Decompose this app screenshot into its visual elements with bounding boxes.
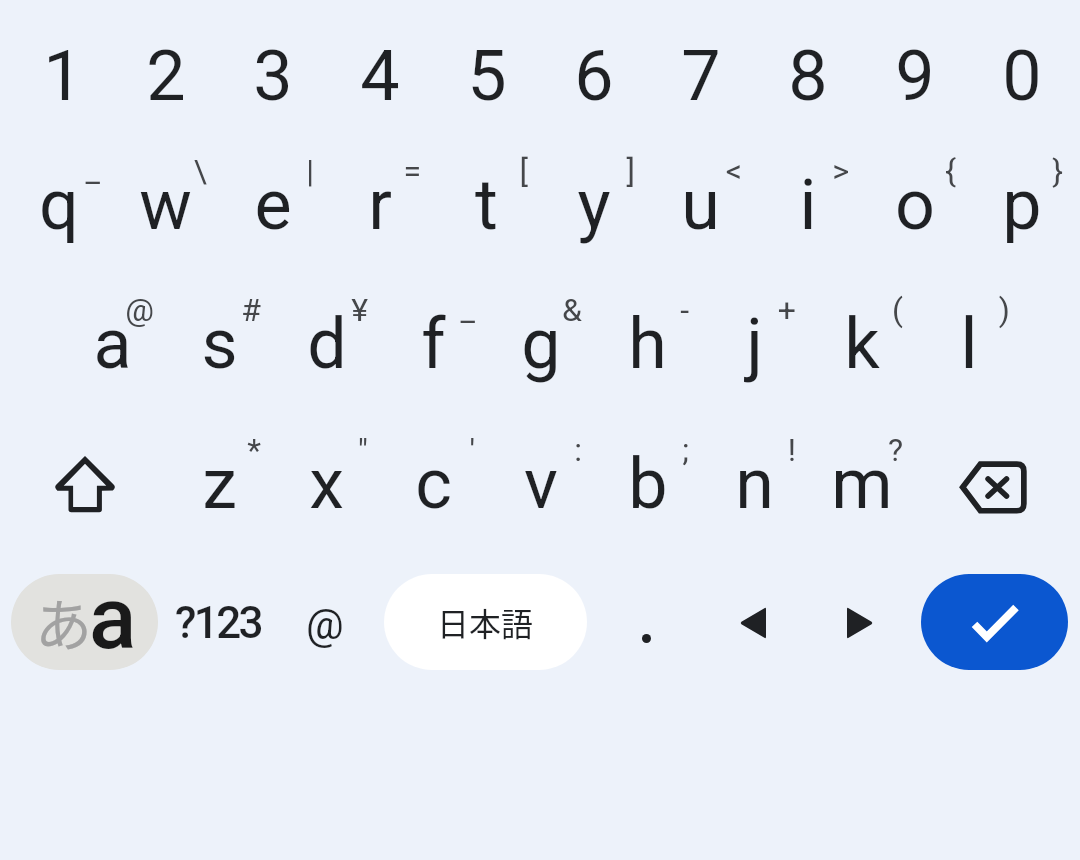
button[interactable]: f [380, 274, 487, 414]
button[interactable]: 5 [433, 6, 540, 146]
button[interactable]: w [112, 135, 219, 275]
staticText: b [628, 443, 668, 525]
staticText: ] [626, 152, 635, 190]
button[interactable]: 日本語 [384, 574, 587, 670]
staticText: f [421, 303, 446, 385]
staticText: t [475, 164, 498, 246]
staticText: 7 [681, 35, 721, 117]
staticText: h [628, 303, 667, 385]
staticText: @ [125, 291, 154, 329]
button[interactable]: あ [11, 574, 158, 670]
staticText: ( [892, 291, 903, 329]
button[interactable]: Backspace [914, 414, 1075, 554]
button[interactable]: q [5, 135, 112, 275]
button[interactable]: l [915, 274, 1022, 414]
staticText: _ [85, 152, 100, 190]
staticText: o [895, 164, 935, 246]
staticText: + [777, 291, 796, 329]
button[interactable]: 8 [754, 6, 861, 146]
staticText: x [309, 443, 344, 525]
button[interactable]: y [540, 135, 647, 275]
staticText: _ [460, 291, 475, 329]
staticText: i [799, 164, 817, 246]
staticText: | [306, 152, 314, 190]
staticText: u [681, 164, 720, 246]
button[interactable]: j [701, 274, 808, 414]
staticText: 1 [43, 35, 83, 117]
staticText: q [39, 164, 79, 246]
staticText: 4 [360, 35, 400, 117]
staticText: " [357, 431, 368, 469]
staticText: @ [306, 600, 344, 649]
button[interactable]: e [219, 135, 326, 275]
button[interactable]: x [273, 414, 380, 554]
button[interactable]: @ [272, 574, 379, 670]
button[interactable]: 1 [5, 6, 112, 146]
staticText: > [832, 152, 849, 190]
button[interactable]: b [594, 414, 701, 554]
button[interactable]: a [59, 274, 166, 414]
staticText: あ [35, 580, 92, 663]
button[interactable]: v [487, 414, 594, 554]
staticText: p [1002, 164, 1042, 246]
button[interactable]: c [380, 414, 487, 554]
button[interactable]: s [166, 274, 273, 414]
staticText: ' [469, 431, 475, 469]
staticText: n [735, 443, 774, 525]
button[interactable]: u [647, 135, 754, 275]
staticText: 6 [574, 35, 614, 117]
staticText: ¥ [351, 291, 368, 329]
button[interactable]: 4 [326, 6, 433, 146]
staticText: # [241, 291, 261, 329]
staticText: ? [887, 431, 903, 469]
button[interactable]: d [273, 274, 380, 414]
button[interactable]: Move cursor right [806, 574, 913, 670]
button[interactable]: Confirm [921, 574, 1068, 670]
staticText: : [574, 431, 582, 469]
staticText: [ [519, 152, 528, 190]
button[interactable]: 0 [968, 6, 1075, 146]
button[interactable]: n [701, 414, 808, 554]
staticText: - [680, 291, 689, 329]
staticText: v [524, 443, 558, 525]
button[interactable]: i [754, 135, 861, 275]
staticText: * [247, 431, 261, 469]
button[interactable]: t [433, 135, 540, 275]
staticText: 5 [467, 35, 507, 117]
button[interactable]: r [326, 135, 433, 275]
staticText: m [831, 443, 893, 525]
staticText: ) [998, 291, 1010, 329]
button[interactable]: z [166, 414, 273, 554]
staticText: k [844, 303, 880, 385]
button[interactable]: h [594, 274, 701, 414]
staticText: r [368, 164, 392, 246]
staticText: < [725, 152, 742, 190]
staticText: z [202, 443, 237, 525]
staticText: = [403, 152, 421, 190]
staticText: 2 [146, 35, 186, 117]
button[interactable]: 2 [112, 6, 219, 146]
staticText: & [562, 291, 582, 329]
button[interactable]: Move cursor left [699, 574, 806, 670]
staticText: s [201, 303, 238, 385]
button[interactable]: Shift [5, 414, 165, 554]
button[interactable] [592, 574, 699, 670]
staticText: l [960, 303, 978, 385]
staticText: ; [682, 431, 689, 469]
button[interactable]: ?123 [165, 574, 272, 670]
staticText: c [415, 443, 452, 525]
button[interactable]: 7 [647, 6, 754, 146]
button[interactable]: o [861, 135, 968, 275]
button[interactable]: g [487, 274, 594, 414]
staticText: d [307, 303, 347, 385]
staticText: a [93, 303, 132, 385]
staticText: } [1052, 152, 1063, 190]
staticText: y [577, 164, 611, 246]
button[interactable]: p [968, 135, 1075, 275]
button[interactable]: 9 [861, 6, 968, 146]
button[interactable]: m [808, 414, 915, 554]
button[interactable]: k [808, 274, 915, 414]
button[interactable]: 6 [540, 6, 647, 146]
staticText: ! [787, 431, 796, 469]
button[interactable]: 3 [219, 6, 326, 146]
